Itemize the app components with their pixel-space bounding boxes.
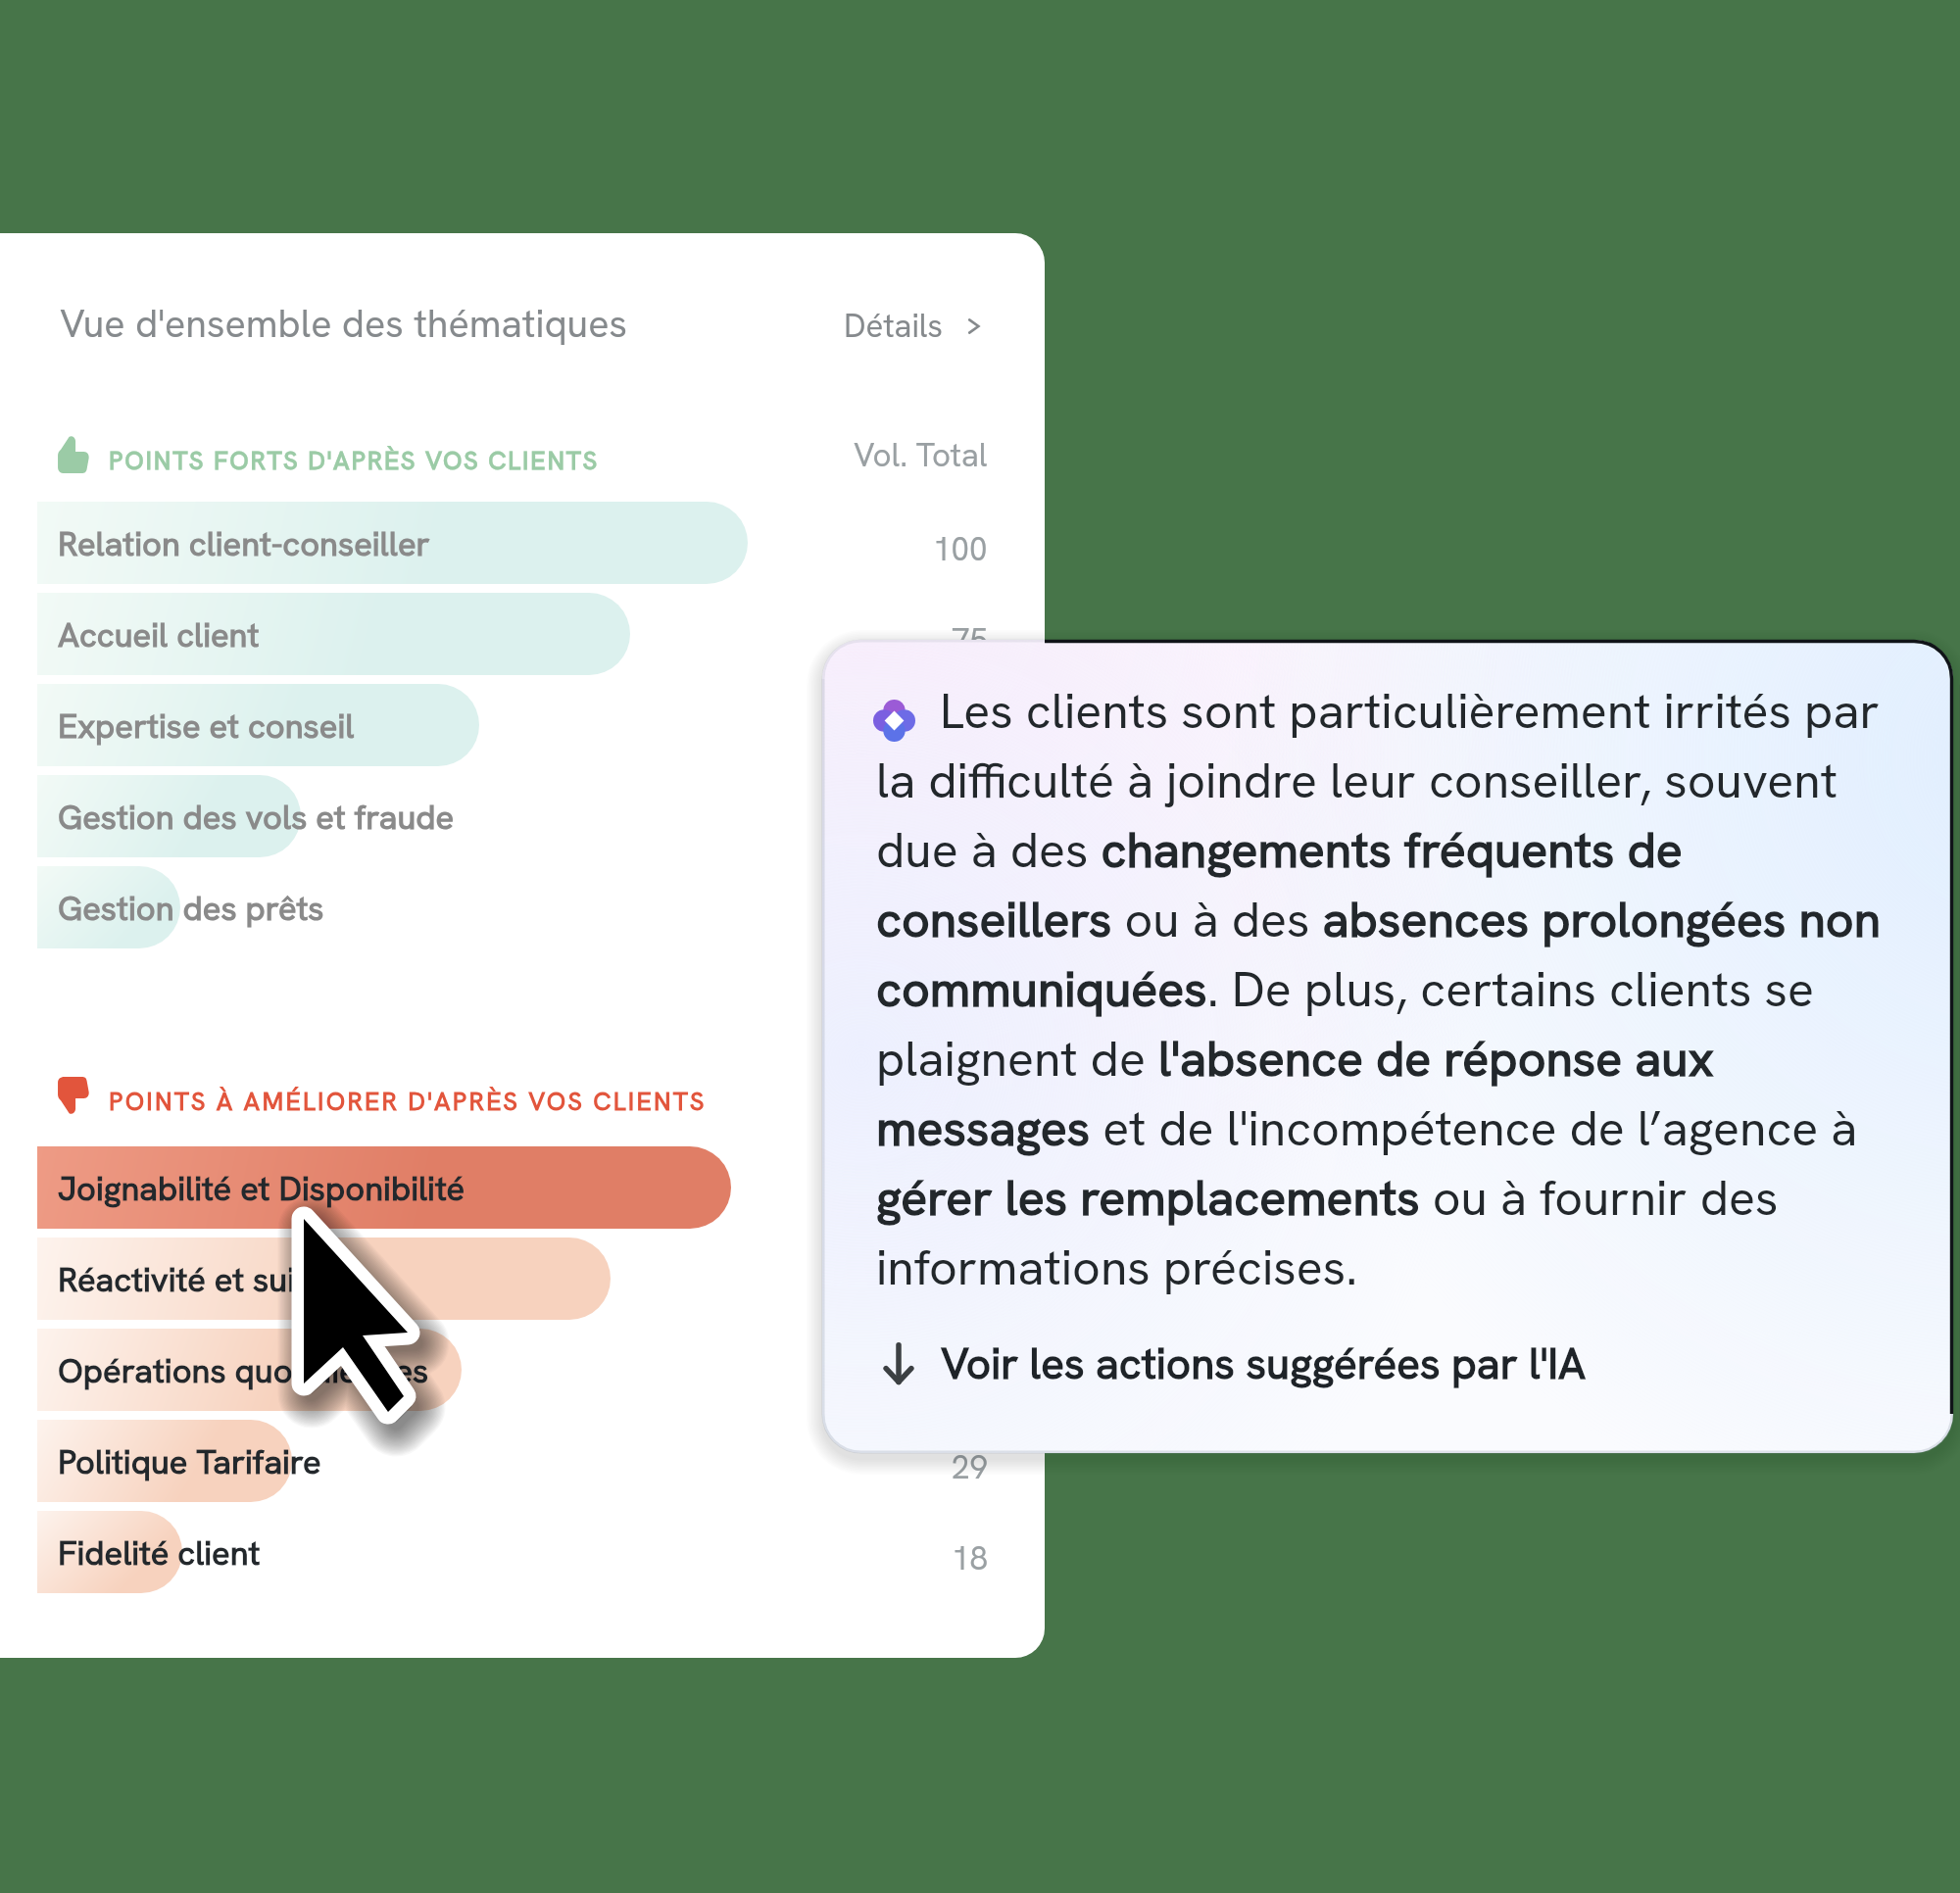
staticText: Détails <box>844 305 944 347</box>
staticText: Les clients sont particulièrement irrité… <box>876 679 1926 1300</box>
staticText: Gestion des prêts <box>58 886 324 930</box>
button[interactable]: Gestion des prêts <box>37 866 980 948</box>
button[interactable]: Fidelité client <box>37 1511 980 1593</box>
staticText: Voir les actions suggérées par l'IA <box>941 1335 1587 1391</box>
button[interactable]: Opérations quotidiennes <box>37 1329 980 1411</box>
button[interactable]: Politique Tarifaire <box>37 1420 980 1502</box>
button[interactable]: Accueil client <box>37 593 980 675</box>
staticText: 18 <box>952 1537 988 1579</box>
button[interactable]: Gestion des vols et fraude <box>37 775 980 857</box>
button[interactable]: Points à améliorer <box>56 1077 89 1114</box>
staticText: Réactivité et suivi <box>58 1257 320 1301</box>
button[interactable]: Expertise et conseil <box>37 684 980 766</box>
staticText: 75 <box>952 619 988 661</box>
staticText: Politique Tarifaire <box>58 1439 321 1483</box>
staticText: Accueil client <box>58 612 260 656</box>
staticText: Expertise et conseil <box>58 704 355 748</box>
staticText: 29 <box>952 1446 988 1488</box>
staticText: Relation client-conseiller <box>58 521 430 565</box>
button[interactable]: Réactivité et suivi <box>37 1238 980 1320</box>
staticText: Opérations quotidiennes <box>58 1348 429 1392</box>
button[interactable]: Relation client-conseiller <box>37 502 980 584</box>
button[interactable]: Points forts <box>56 436 89 473</box>
button[interactable]: Détails <box>844 305 985 347</box>
staticText: Vol. Total <box>854 434 988 476</box>
button[interactable]: Joignabilité et Disponibilité <box>37 1146 980 1229</box>
button[interactable]: Voir les actions suggérées par l'IA <box>876 1335 1587 1391</box>
staticText: Gestion des vols et fraude <box>58 795 455 839</box>
staticText: POINTS À AMÉLIORER D'APRÈS VOS CLIENTS <box>109 1085 707 1118</box>
other: Pointer <box>278 1179 465 1448</box>
staticText: Vue d'ensemble des thématiques <box>60 298 628 348</box>
staticText: 100 <box>933 528 988 570</box>
staticText: Joignabilité et Disponibilité <box>58 1166 465 1210</box>
staticText: Fidelité client <box>58 1530 261 1575</box>
staticText: POINTS FORTS D'APRÈS VOS CLIENTS <box>109 444 599 477</box>
